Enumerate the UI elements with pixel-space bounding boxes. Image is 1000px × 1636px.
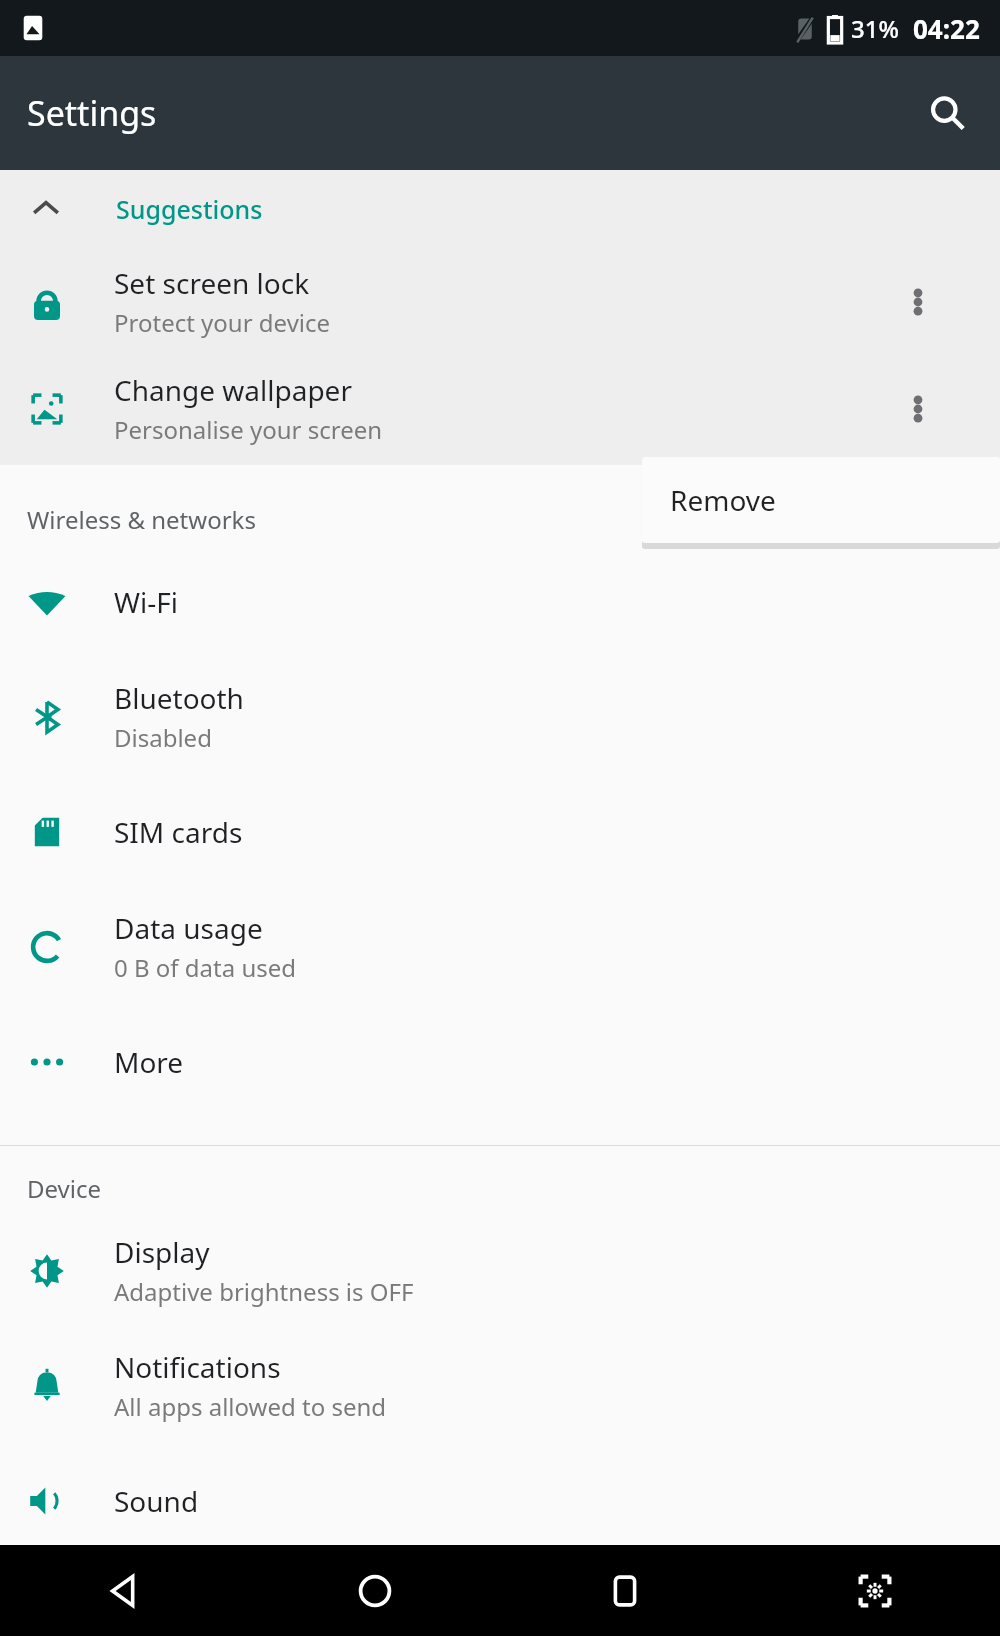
staticText: Adaptive brightness is OFF <box>114 1275 414 1308</box>
staticText: Device <box>27 1172 102 1205</box>
button[interactable]: Bluetooth <box>0 659 1000 774</box>
button[interactable]: Search <box>916 82 978 144</box>
button[interactable]: Data usage <box>0 889 1000 1004</box>
button[interactable]: Home <box>250 1545 500 1636</box>
staticText: Disabled <box>114 721 212 754</box>
button[interactable]: Display <box>0 1213 1000 1328</box>
button[interactable]: Screenshot <box>750 1545 1000 1636</box>
staticText: Protect your device <box>114 306 331 339</box>
staticText: Wi-Fi <box>114 583 179 621</box>
staticText: Display <box>114 1233 210 1271</box>
staticText: 31% <box>851 12 899 45</box>
staticText: More <box>114 1043 184 1081</box>
button[interactable]: More options <box>892 383 944 435</box>
staticText: Data usage <box>114 909 263 947</box>
staticText: All apps allowed to send <box>114 1390 387 1423</box>
button[interactable]: Sound <box>0 1443 1000 1558</box>
staticText: Personalise your screen <box>114 413 383 446</box>
button[interactable]: Remove <box>642 457 1000 543</box>
button[interactable]: Wi-Fi <box>0 544 1000 659</box>
button[interactable]: Notifications <box>0 1328 1000 1443</box>
staticText: Bluetooth <box>114 679 244 717</box>
staticText: Change wallpaper <box>114 371 352 409</box>
staticText: 0 B of data used <box>114 951 297 984</box>
button[interactable]: Set screen lock <box>0 248 1000 355</box>
staticText: SIM cards <box>114 813 243 851</box>
staticText: Suggestions <box>116 192 263 226</box>
staticText: Set screen lock <box>114 264 310 302</box>
button[interactable]: More options <box>892 276 944 328</box>
button[interactable]: More <box>0 1004 1000 1119</box>
staticText: Remove <box>670 481 776 519</box>
staticText: Sound <box>114 1482 199 1520</box>
button[interactable]: SIM cards <box>0 774 1000 889</box>
staticText: Notifications <box>114 1348 281 1386</box>
staticText: Wireless & networks <box>27 503 256 536</box>
button[interactable]: Back <box>0 1545 250 1636</box>
button[interactable]: Change wallpaper <box>0 355 1000 462</box>
staticText: Settings <box>27 90 157 136</box>
button[interactable]: Suggestions <box>0 170 1000 248</box>
staticText: 04:22 <box>913 11 980 46</box>
button[interactable]: Recents <box>500 1545 750 1636</box>
